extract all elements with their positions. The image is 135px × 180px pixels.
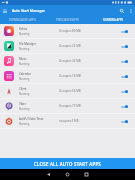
staticText: Occupies 80 MB (59, 29, 81, 33)
staticText: ActiVU Video Teste (19, 117, 44, 121)
button[interactable]: Back (39, 169, 58, 180)
staticText: Auto Start Manager (12, 8, 45, 13)
button[interactable]: Auto start toggle (120, 102, 129, 111)
button[interactable]: Yahoo (0, 24, 135, 39)
button[interactable]: Auto start toggle (120, 72, 129, 81)
staticText: Running (19, 32, 30, 36)
staticText: Running (19, 92, 30, 96)
staticText: File Manager (19, 42, 37, 46)
staticText: Occupies 18 MB (59, 74, 81, 78)
button[interactable]: Auto start toggle (120, 42, 129, 51)
button[interactable]: File Manager (0, 39, 135, 54)
staticText: Calendar (19, 72, 31, 76)
staticText: Occupies 56 MB (59, 89, 81, 93)
staticText: Running (19, 77, 30, 81)
staticText: Running (19, 47, 30, 51)
button[interactable]: CLOSE ALL AUTO START APPS (0, 158, 135, 169)
button[interactable]: Open navigation drawer (0, 6, 9, 15)
staticText: CLOSE ALL AUTO START APPS (34, 161, 102, 167)
staticText: Occupies 22 MB (59, 44, 81, 48)
button[interactable]: Search (117, 6, 126, 15)
button[interactable]: ActiVU Video Teste (0, 114, 135, 129)
button[interactable]: RUNNING APPS (90, 16, 135, 24)
staticText: occupies 4 MB (59, 119, 79, 123)
staticText: Running (19, 62, 30, 66)
button[interactable]: Auto start toggle (120, 87, 129, 96)
button[interactable]: Auto start toggle (120, 57, 129, 66)
staticText: Running (19, 107, 30, 111)
button[interactable]: Client (0, 84, 135, 99)
button[interactable]: More options (126, 6, 135, 15)
button[interactable]: Recent apps (77, 169, 96, 180)
staticText: Yahoo (19, 27, 28, 31)
staticText: DOWNLOADED APPS (9, 18, 36, 22)
staticText: RUNNING APPS (103, 18, 123, 22)
button[interactable]: Music (0, 54, 135, 69)
button[interactable]: Viber (0, 99, 135, 114)
button[interactable]: Auto start toggle (120, 27, 129, 36)
staticText: Occupies 73 MB (59, 104, 81, 108)
button[interactable]: DOWNLOADED APPS (0, 16, 45, 24)
staticText: Occupies 32 MB (59, 59, 81, 63)
button[interactable]: Calendar (0, 69, 135, 84)
button[interactable]: Home (58, 169, 77, 180)
staticText: Viber (19, 102, 26, 106)
staticText: Client (19, 87, 27, 91)
staticText: PRELOADED APPS (56, 18, 79, 22)
button[interactable]: Auto start toggle (120, 117, 129, 126)
button[interactable]: PRELOADED APPS (45, 16, 90, 24)
staticText: Running (19, 122, 30, 126)
staticText: Music (19, 57, 27, 61)
